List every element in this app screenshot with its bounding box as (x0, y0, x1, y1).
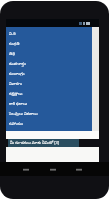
staticText: మీ సూచనలు మాకు ఏమిటో [3] (10, 140, 60, 146)
staticText: సహాయం (9, 122, 24, 127)
button[interactable]: నక్షత్రాలు (9, 89, 92, 99)
staticText: ముహూర్తం (9, 62, 26, 67)
button[interactable]: తిథి (9, 49, 92, 59)
staticText: వివాహం (9, 82, 23, 87)
staticText: వి-ఠి (9, 31, 16, 37)
staticText: నక్షత్రాలు (9, 92, 23, 97)
staticText: తిథి (9, 52, 15, 57)
button[interactable]: Home (47, 164, 59, 174)
staticText: పంచాంగం (9, 72, 25, 77)
button[interactable]: రాశి ఫలాలు (9, 99, 92, 109)
button[interactable]: Recent apps (73, 164, 85, 174)
button[interactable]: సెలవులు వివరాలు (9, 109, 92, 119)
staticText: రాశి ఫలాలు (9, 101, 28, 107)
button[interactable]: సంగతి (9, 39, 92, 49)
button[interactable]: Back (20, 164, 32, 174)
button[interactable]: మీ సూచనలు మాకు ఏమిటో [3] (8, 139, 79, 147)
staticText: సంగతి (9, 42, 20, 47)
button[interactable]: పంచాంగం (9, 69, 92, 79)
button[interactable]: ముహూర్తం (9, 59, 92, 69)
button[interactable]: వి-ఠి (9, 29, 92, 39)
button[interactable]: సహాయం (9, 119, 92, 129)
staticText: సెలవులు వివరాలు (9, 111, 38, 117)
button[interactable]: వివాహం (9, 79, 92, 89)
